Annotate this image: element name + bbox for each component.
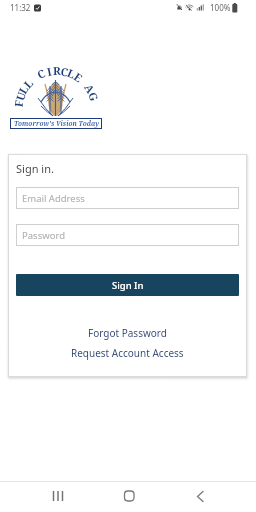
button[interactable] (186, 485, 212, 509)
staticText: L (20, 75, 36, 91)
staticText: U (12, 89, 28, 102)
staticText: Sign in. (16, 161, 54, 176)
button[interactable]: Request Account Access (71, 346, 184, 360)
staticText: Tomorrow's Vision Today (14, 119, 99, 128)
button[interactable]: Email Address (16, 187, 239, 209)
staticText: Sign In (112, 279, 144, 292)
staticText: I (45, 63, 53, 78)
staticText: G (86, 90, 102, 103)
button[interactable]: Forgot Password (88, 326, 167, 340)
staticText: F (11, 99, 25, 108)
button[interactable]: Password (16, 224, 239, 246)
staticText: Email Address (22, 192, 85, 205)
staticText: C (34, 65, 47, 81)
staticText: 11:32 (10, 2, 31, 13)
staticText: R (53, 63, 61, 77)
staticText: L (15, 82, 31, 96)
staticText: A (82, 81, 98, 96)
button[interactable] (45, 485, 71, 509)
staticText: C (60, 63, 70, 79)
staticText: 100% (210, 2, 231, 13)
staticText: L (66, 65, 78, 81)
button[interactable]: Sign In (16, 274, 239, 296)
button[interactable] (116, 485, 142, 509)
staticText: E (72, 69, 86, 85)
staticText: Password (22, 229, 65, 242)
